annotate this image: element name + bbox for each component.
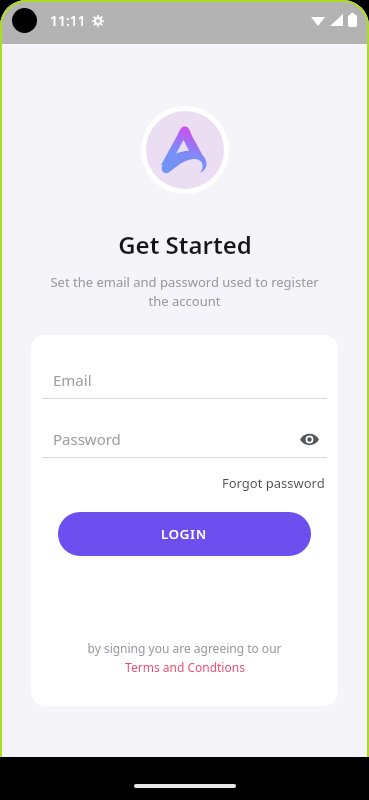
- button[interactable]: Email: [42, 361, 327, 399]
- staticText: Set the email and password used to regis…: [50, 273, 319, 310]
- button[interactable]: Terms and Condtions: [125, 659, 245, 675]
- staticText: by signing you are agreeing to our: [87, 640, 282, 656]
- staticText: Forgot password: [222, 474, 325, 492]
- button[interactable]: Password: [42, 420, 327, 457]
- staticText: Email: [53, 370, 92, 390]
- button[interactable]: Forgot password: [220, 472, 327, 494]
- staticText: LOGIN: [161, 525, 208, 543]
- staticText: Get Started: [118, 228, 252, 261]
- button[interactable]: Show password: [295, 425, 323, 453]
- button[interactable]: LOGIN: [58, 512, 311, 556]
- staticText: Password: [53, 429, 121, 449]
- staticText: Terms and Condtions: [125, 659, 245, 675]
- staticText: 11:11: [50, 11, 86, 30]
